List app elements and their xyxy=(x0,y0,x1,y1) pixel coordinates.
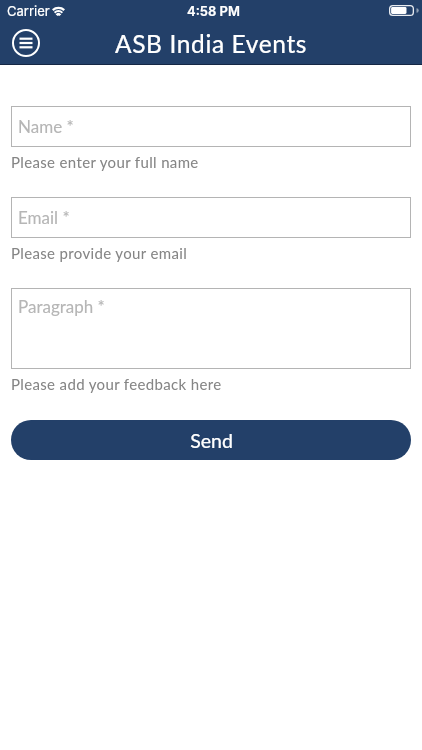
staticText: 4:58 PM xyxy=(187,3,240,19)
staticText: ASB India Events xyxy=(115,29,308,58)
staticText: Please enter your full name xyxy=(11,153,199,171)
staticText: Carrier xyxy=(7,3,50,19)
staticText: Email * xyxy=(18,207,70,227)
button[interactable]: Email * xyxy=(11,197,411,238)
staticText: Paragraph * xyxy=(18,296,105,316)
button[interactable]: Paragraph * xyxy=(11,288,411,369)
button[interactable]: Name * xyxy=(11,106,411,147)
staticText: Please add your feedback here xyxy=(11,375,222,393)
staticText: Name * xyxy=(18,116,74,136)
staticText: Send xyxy=(190,429,233,452)
button[interactable]: Open navigation menu xyxy=(12,29,40,57)
staticText: Please provide your email xyxy=(11,244,188,262)
button[interactable]: Send xyxy=(11,420,411,460)
